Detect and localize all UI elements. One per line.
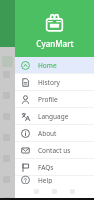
- button[interactable]: History: [15, 74, 94, 90]
- button[interactable]: FAQs: [15, 159, 94, 175]
- button[interactable]: Profile: [15, 91, 94, 107]
- staticText: CyanMart: [36, 38, 74, 49]
- button[interactable]: Help: [15, 176, 94, 184]
- staticText: Contact us: [38, 146, 71, 155]
- staticText: History: [38, 78, 60, 87]
- button[interactable]: Contact us: [15, 142, 94, 158]
- staticText: Language: [38, 112, 69, 121]
- staticText: FAQs: [38, 163, 54, 172]
- staticText: Help: [38, 176, 53, 184]
- staticText: About: [38, 129, 57, 138]
- button[interactable]: Language: [15, 108, 94, 124]
- button[interactable]: Home: [15, 57, 94, 73]
- staticText: Home: [38, 61, 57, 70]
- staticText: Profile: [38, 95, 58, 104]
- button[interactable]: About: [15, 125, 94, 141]
